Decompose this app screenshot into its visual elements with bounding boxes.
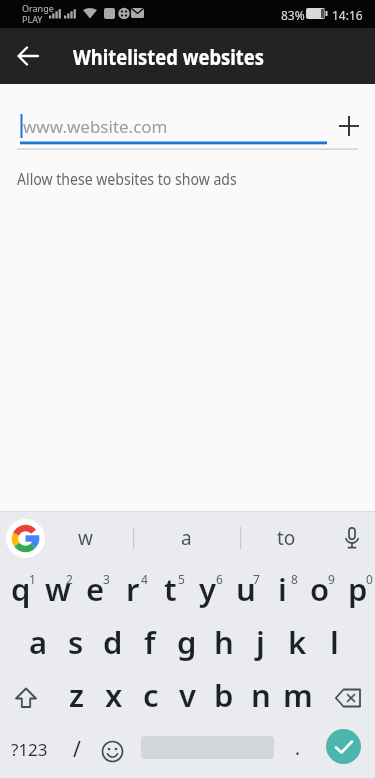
staticText: PLAY [22,13,43,25]
button[interactable]: j [242,618,279,671]
button[interactable]: p [339,565,375,618]
staticText: u [236,568,256,610]
staticText: ?123 [11,738,48,761]
staticText: c [143,674,159,716]
staticText: Orange [22,2,54,14]
staticText: d [103,621,123,663]
staticText: g [177,621,197,663]
button[interactable]: ?123 [3,723,55,776]
button[interactable] [6,519,45,558]
button[interactable]: www.website.com [0,94,340,146]
staticText: w [78,525,93,551]
staticText: 1 [29,571,36,585]
staticText: v [179,674,196,716]
button[interactable]: r [114,565,151,618]
staticText: 6 [216,571,223,585]
button[interactable]: w [39,565,76,618]
button[interactable]: u [227,565,264,618]
staticText: k [288,621,307,663]
button[interactable]: b [205,671,242,724]
staticText: t [164,568,177,610]
button[interactable]: n [242,671,279,724]
staticText: l [330,621,339,663]
button[interactable]: i [264,565,301,618]
staticText: p [348,568,368,610]
staticText: y [199,568,216,610]
button[interactable]: e [77,565,114,618]
button[interactable]: to [251,518,321,558]
button[interactable]: d [94,618,131,671]
staticText: f [144,621,156,663]
staticText: r [126,568,140,610]
button[interactable]: t [152,565,189,618]
staticText: a [181,525,192,551]
staticText: e [86,568,105,610]
button[interactable]: h [205,618,242,671]
staticText: 8 [291,571,298,585]
button[interactable]: z [58,671,95,724]
staticText: 83% [281,7,305,23]
staticText: Whitelisted websites [73,43,265,72]
button[interactable]: a [146,518,226,558]
button[interactable]: s [57,618,94,671]
button[interactable]: a [20,618,57,671]
button[interactable] [326,729,361,764]
staticText: i [278,568,287,610]
staticText: n [251,674,271,716]
button[interactable]: v [169,671,206,724]
staticText: / [73,735,81,764]
button[interactable]: w [45,518,125,558]
button[interactable]: k [279,618,316,671]
staticText: m [283,674,313,716]
staticText: 4 [141,571,148,585]
staticText: b [214,674,234,716]
button[interactable]: y [189,565,226,618]
staticText: 0 [366,571,373,585]
staticText: 5 [178,571,185,585]
staticText: 3 [103,571,110,585]
button[interactable]: o [301,565,338,618]
staticText: z [69,674,85,716]
button[interactable] [8,36,48,76]
button[interactable]: f [131,618,168,671]
button[interactable] [320,671,375,724]
button[interactable]: g [168,618,205,671]
button[interactable]: m [279,671,316,724]
button[interactable] [94,725,131,778]
staticText: j [256,621,265,663]
button[interactable]: x [95,671,132,724]
button[interactable] [327,104,371,148]
staticText: Allow these websites to show ads [17,168,237,190]
staticText: w [45,568,71,610]
staticText: q [11,568,31,610]
staticText: h [214,621,234,663]
staticText: to [277,525,296,551]
staticText: 14:16 [332,7,363,23]
staticText: . [295,735,301,761]
staticText: 9 [328,571,335,585]
button[interactable] [0,671,52,724]
staticText: s [68,621,84,663]
button[interactable]: l [316,618,353,671]
button[interactable]: c [132,671,169,724]
staticText: x [105,674,123,716]
button[interactable]: . [283,721,313,774]
staticText: www.website.com [23,115,168,138]
staticText: 2 [66,571,73,585]
staticText: a [29,621,48,663]
button[interactable]: q [2,565,39,618]
button[interactable] [332,518,372,558]
button[interactable]: / [58,723,96,776]
staticText: o [310,568,330,610]
staticText: 7 [253,571,260,585]
